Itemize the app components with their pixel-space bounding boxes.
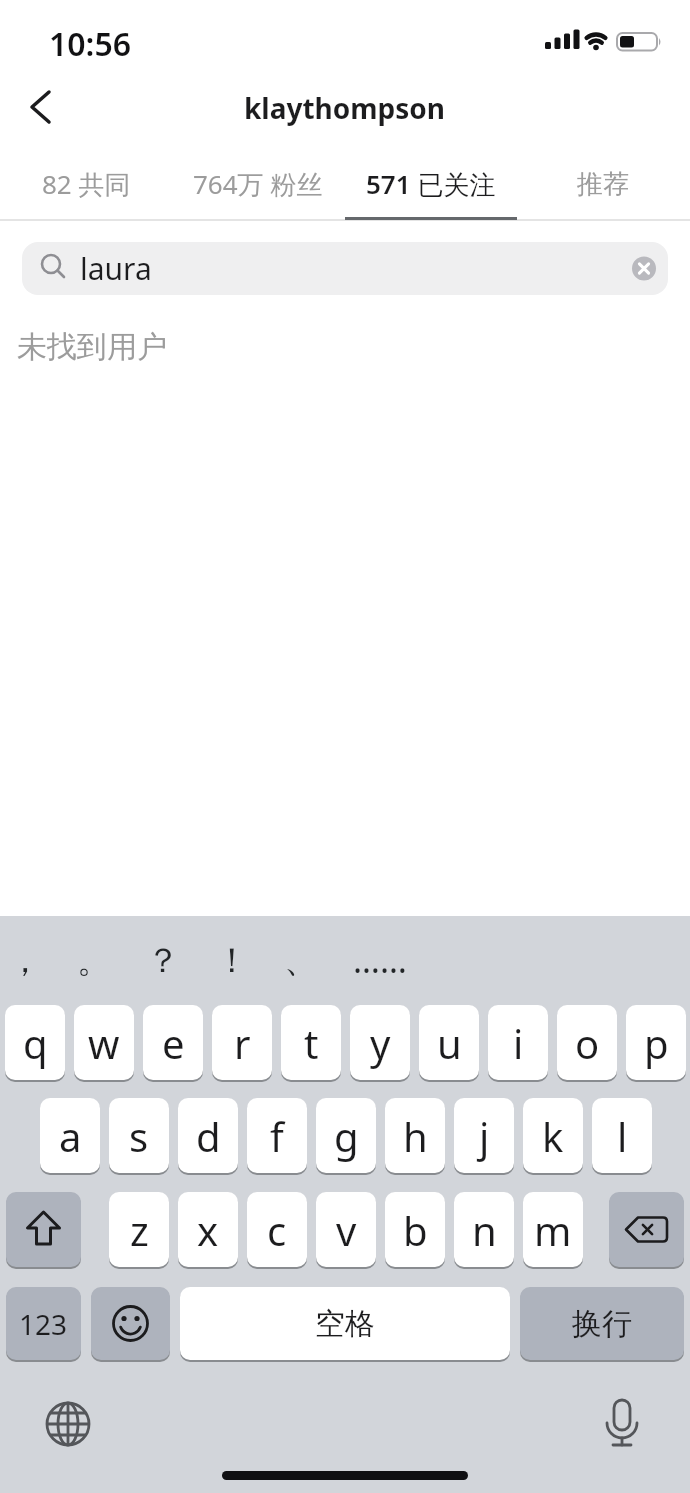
button[interactable]: e — [143, 1005, 203, 1080]
button[interactable]: q — [5, 1005, 65, 1080]
button[interactable]: d — [178, 1098, 238, 1173]
button[interactable]: i — [488, 1005, 548, 1080]
staticText: b — [403, 1203, 428, 1257]
button[interactable]: 换行 — [520, 1287, 684, 1360]
staticText: r — [234, 1016, 251, 1070]
staticText: q — [23, 1016, 48, 1070]
button[interactable]: laura — [22, 242, 668, 295]
staticText: a — [59, 1109, 82, 1163]
button[interactable]: y — [350, 1005, 410, 1080]
staticText: ， — [8, 939, 42, 982]
staticText: 571 已关注 — [366, 166, 496, 202]
button[interactable]: f — [247, 1098, 307, 1173]
button[interactable] — [594, 1394, 650, 1454]
button[interactable]: 764万 粉丝 — [172, 160, 344, 208]
staticText: 换行 — [572, 1305, 632, 1343]
button[interactable]: b — [385, 1192, 445, 1267]
staticText: 空格 — [315, 1305, 375, 1343]
staticText: klaythompson — [244, 89, 446, 127]
staticText: c — [267, 1203, 287, 1257]
staticText: j — [479, 1109, 490, 1163]
button[interactable]: 空格 — [180, 1287, 510, 1360]
staticText: x — [197, 1203, 219, 1257]
button[interactable]: g — [316, 1098, 376, 1173]
button[interactable]: a — [40, 1098, 100, 1173]
button[interactable]: 推荐 — [517, 160, 689, 208]
staticText: ？ — [146, 939, 180, 982]
staticText: w — [88, 1016, 120, 1070]
staticText: o — [575, 1016, 600, 1070]
staticText: 764万 粉丝 — [193, 166, 323, 202]
staticText: 82 共同 — [42, 166, 131, 202]
staticText: s — [129, 1109, 149, 1163]
button[interactable]: l — [592, 1098, 652, 1173]
button[interactable]: v — [316, 1192, 376, 1267]
button[interactable] — [91, 1287, 170, 1360]
staticText: …… — [353, 937, 407, 983]
button[interactable] — [40, 1396, 96, 1452]
staticText: e — [162, 1016, 185, 1070]
staticText: m — [534, 1203, 572, 1257]
button[interactable]: 82 共同 — [0, 160, 172, 208]
button[interactable]: 571 已关注 — [345, 160, 517, 208]
staticText: l — [617, 1109, 628, 1163]
button[interactable]: j — [454, 1098, 514, 1173]
staticText: z — [130, 1203, 149, 1257]
button[interactable]: p — [626, 1005, 686, 1080]
staticText: k — [542, 1109, 564, 1163]
staticText: ！ — [215, 939, 249, 982]
staticText: v — [336, 1203, 357, 1257]
staticText: i — [513, 1016, 524, 1070]
button[interactable]: x — [178, 1192, 238, 1267]
button[interactable]: c — [247, 1192, 307, 1267]
staticText: d — [196, 1109, 221, 1163]
button[interactable]: h — [385, 1098, 445, 1173]
button[interactable]: k — [523, 1098, 583, 1173]
button[interactable] — [14, 81, 66, 133]
staticText: t — [304, 1016, 319, 1070]
staticText: 。 — [77, 939, 111, 982]
staticText: g — [334, 1109, 359, 1163]
button[interactable]: 123 — [6, 1287, 81, 1360]
button[interactable]: u — [419, 1005, 479, 1080]
staticText: 、 — [284, 939, 318, 982]
staticText: n — [472, 1203, 497, 1257]
staticText: p — [644, 1016, 669, 1070]
button[interactable]: r — [212, 1005, 272, 1080]
button[interactable]: t — [281, 1005, 341, 1080]
button[interactable]: w — [74, 1005, 134, 1080]
staticText: 推荐 — [577, 168, 629, 201]
staticText: laura — [80, 248, 152, 289]
staticText: h — [403, 1109, 428, 1163]
staticText: f — [270, 1109, 284, 1163]
button[interactable]: m — [523, 1192, 583, 1267]
button[interactable]: z — [109, 1192, 169, 1267]
staticText: y — [370, 1016, 391, 1070]
staticText: u — [437, 1016, 462, 1070]
button[interactable]: s — [109, 1098, 169, 1173]
button[interactable] — [609, 1192, 684, 1267]
staticText: 123 — [19, 1305, 68, 1343]
staticText: 未找到用户 — [17, 328, 167, 364]
button[interactable]: o — [557, 1005, 617, 1080]
staticText: 10:56 — [49, 22, 132, 62]
button[interactable]: n — [454, 1192, 514, 1267]
button[interactable] — [6, 1192, 81, 1267]
